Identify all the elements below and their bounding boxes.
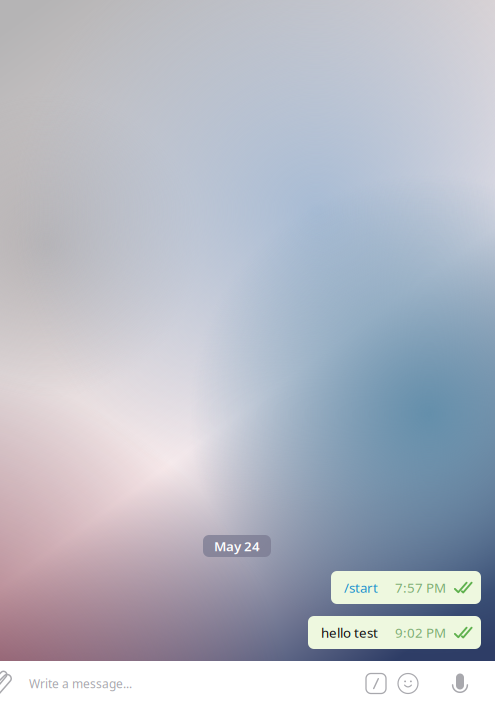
button[interactable]: Emoji	[398, 661, 418, 706]
button[interactable]: Attach media	[0, 661, 14, 706]
staticText: /start	[344, 579, 378, 596]
staticText: 9:02 PM	[395, 624, 446, 641]
staticText: Write a message...	[29, 675, 132, 691]
button[interactable]: Record voice message	[452, 661, 468, 706]
staticText: hello test	[321, 624, 378, 641]
staticText: 7:57 PM	[395, 579, 446, 596]
button[interactable]: Bot commands	[366, 661, 386, 706]
staticText: May 24	[214, 537, 260, 555]
button[interactable]: Write a message...	[14, 661, 366, 706]
